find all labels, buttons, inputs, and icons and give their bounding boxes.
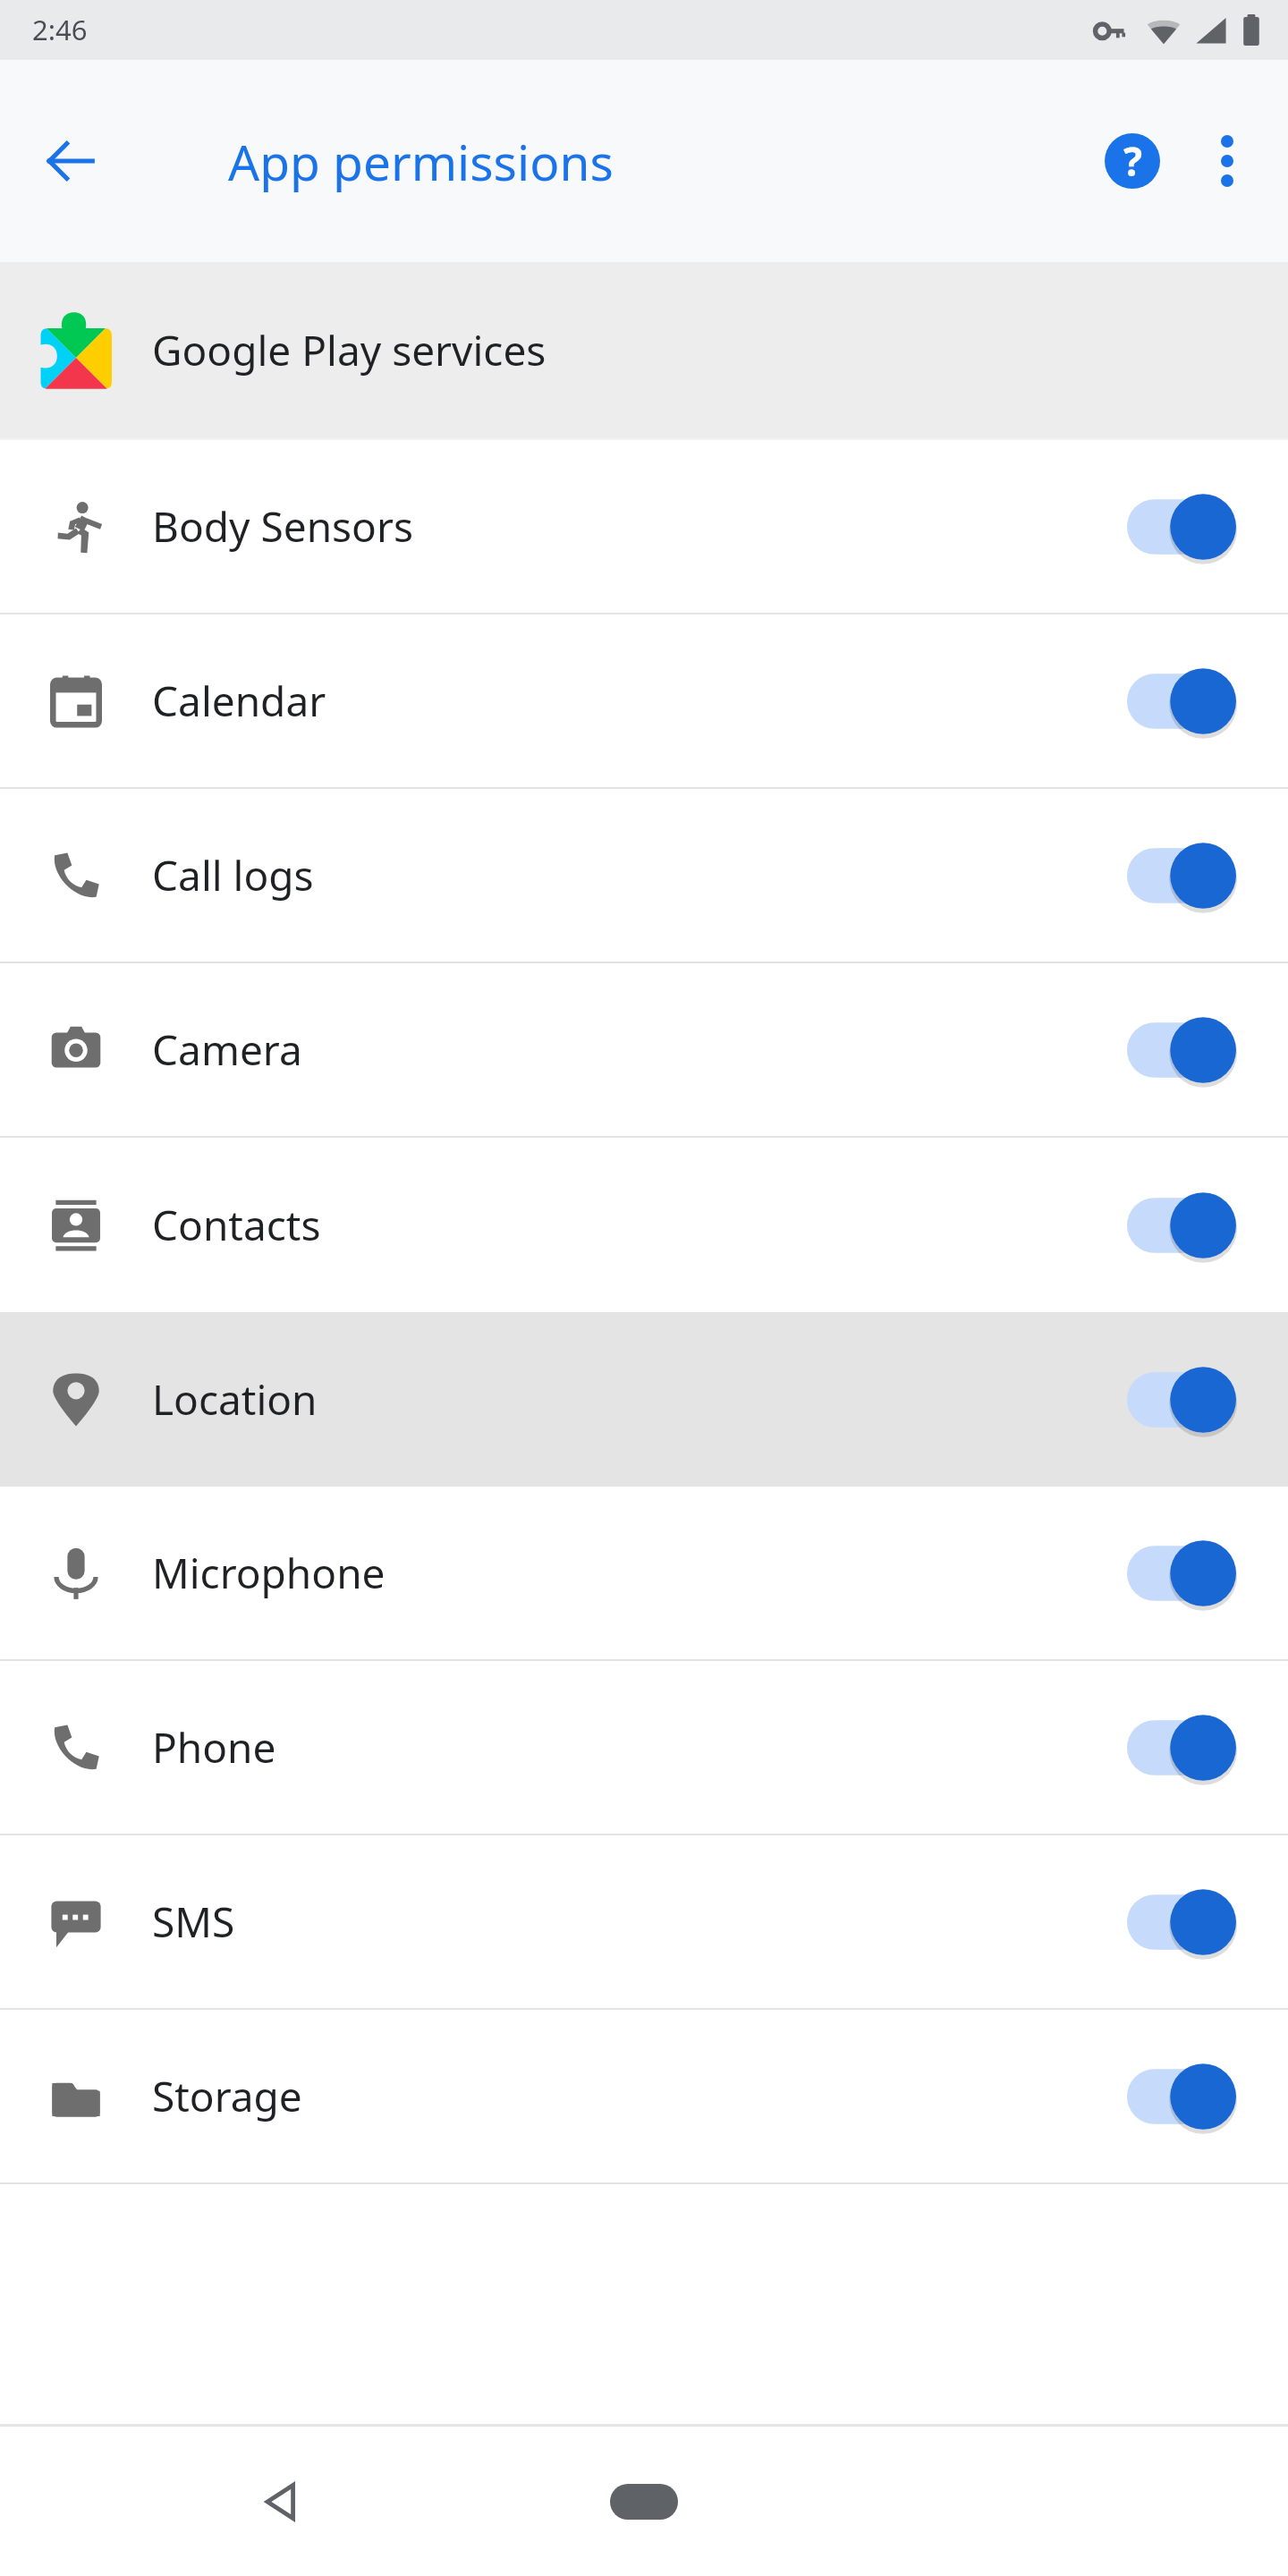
staticText: Google Play services: [152, 322, 547, 378]
staticText: Body Sensors: [152, 498, 1127, 555]
staticText: Microphone: [152, 1545, 1127, 1601]
staticText: ?: [1123, 134, 1142, 188]
staticText: Contacts: [152, 1197, 1127, 1253]
button[interactable]: More options: [1181, 114, 1274, 208]
button[interactable]: Home: [572, 2453, 716, 2551]
button[interactable]: Back: [21, 112, 120, 210]
button[interactable]: Call logs: [0, 789, 1288, 962]
staticText: App permissions: [228, 128, 614, 195]
staticText: Storage: [152, 2068, 1127, 2124]
button[interactable]: Back: [233, 2453, 331, 2551]
staticText: Calendar: [152, 673, 1127, 729]
staticText: Camera: [152, 1021, 1127, 1078]
button[interactable]: Location: [0, 1312, 1288, 1487]
button[interactable]: Permission toggle, on: [1127, 826, 1261, 925]
button[interactable]: Permission toggle, on: [1127, 1699, 1261, 1797]
button[interactable]: Permission toggle, on: [1127, 478, 1261, 576]
button[interactable]: Permission toggle, on: [1127, 1001, 1261, 1099]
button[interactable]: Permission toggle, on: [1127, 1176, 1261, 1275]
button[interactable]: Permission toggle, on: [1127, 1351, 1261, 1449]
staticText: Location: [152, 1371, 1127, 1428]
button[interactable]: Permission toggle, on: [1127, 652, 1261, 750]
button[interactable]: Permission toggle, on: [1127, 1524, 1261, 1623]
button[interactable]: Calendar: [0, 614, 1288, 787]
button[interactable]: Permission toggle, on: [1127, 2047, 1261, 2146]
button[interactable]: Storage: [0, 2010, 1288, 2182]
staticText: Phone: [152, 1719, 1127, 1775]
button[interactable]: SMS: [0, 1835, 1288, 2008]
button[interactable]: Phone: [0, 1661, 1288, 1834]
button[interactable]: Microphone: [0, 1487, 1288, 1659]
staticText: 2:46: [32, 11, 88, 48]
button[interactable]: Permission toggle, on: [1127, 1873, 1261, 1971]
button[interactable]: Body Sensors: [0, 440, 1288, 613]
staticText: Call logs: [152, 847, 1127, 903]
staticText: SMS: [152, 1894, 1127, 1950]
button[interactable]: Contacts: [0, 1138, 1288, 1312]
button[interactable]: Camera: [0, 963, 1288, 1136]
button[interactable]: Google Play services: [0, 262, 1288, 438]
button[interactable]: Help: [1084, 113, 1181, 209]
